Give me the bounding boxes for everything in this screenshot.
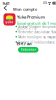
staticText: Essai gratuit de 1 mois — [17, 21, 56, 26]
staticText: puis 15 € / an — [17, 27, 37, 30]
staticText: 9:41 — [2, 1, 9, 6]
staticText: Yuka Premium — [17, 14, 45, 20]
button[interactable]: S'abonner — [18, 47, 38, 53]
staticText: yuka — [5, 20, 13, 24]
staticText: Recherche dans la base Yuka — [18, 30, 56, 34]
staticText: Mon compte — [13, 7, 37, 12]
staticText: Analyse illimitée des produits — [18, 25, 56, 29]
staticText: Soutien à l'indépendance — [18, 41, 55, 44]
staticText: 4G — [43, 1, 47, 5]
button[interactable]: Back — [0, 2, 9, 13]
staticText: S'abonner — [21, 48, 36, 51]
staticText: Mode hors-ligne au magasin — [18, 35, 56, 39]
staticText: 15 € / an — [16, 41, 32, 46]
